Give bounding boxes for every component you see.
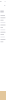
button[interactable]: More [4,5,6,6]
